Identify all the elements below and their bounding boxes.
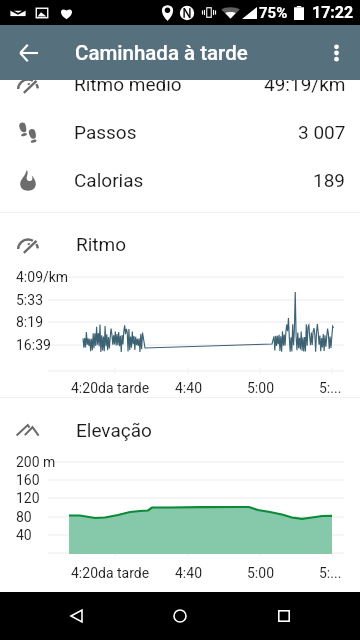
staticText: 16:39 [16,337,51,353]
button[interactable]: Recents [256,592,312,640]
staticText: Ritmo médio [74,73,182,95]
staticText: 75% [259,4,288,22]
staticText: 40 [16,527,32,543]
button[interactable]: Back [4,25,52,80]
staticText: 4:40 [175,380,202,396]
staticText: 80 [16,509,32,525]
staticText: 4:40 [175,565,202,581]
staticText: 200 m [16,454,56,470]
staticText: Caminhada à tarde [75,41,248,65]
button[interactable]: Calorias [0,156,360,203]
staticText: 5:... [319,380,342,396]
staticText: 4:20da tarde [71,565,150,581]
staticText: 120 [16,490,40,506]
staticText: 5:00 [247,380,274,396]
staticText: 8:19 [16,314,43,330]
staticText: Passos [74,121,137,143]
staticText: 5:33 [16,292,43,308]
staticText: 4:20da tarde [71,380,150,396]
button[interactable]: Ritmo médio [0,60,360,107]
staticText: Elevação [76,419,152,441]
button[interactable]: Back [48,592,104,640]
staticText: 5:... [319,565,342,581]
staticText: 49:19/km [264,73,346,95]
staticText: 4:09/km [16,269,69,285]
staticText: Ritmo [76,233,127,255]
staticText: 3 007 [298,121,346,143]
button[interactable]: Passos [0,108,360,155]
staticText: 189 [313,169,346,191]
button[interactable]: Home [152,592,208,640]
staticText: 160 [16,472,40,488]
staticText: 17:22 [312,3,354,22]
staticText: 5:00 [247,565,274,581]
button[interactable]: More options [312,25,360,80]
staticText: Calorias [74,169,144,191]
